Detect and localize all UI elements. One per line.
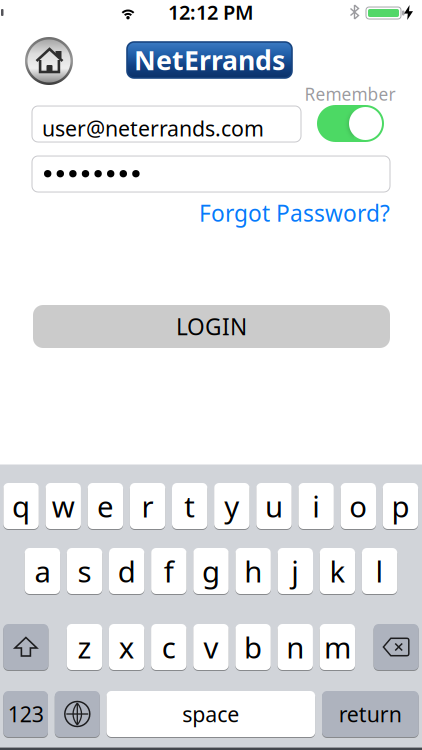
- button[interactable]: l: [362, 547, 397, 594]
- staticText: 12:12 PM: [168, 0, 254, 25]
- staticText: s: [77, 551, 91, 590]
- button[interactable]: x: [109, 623, 144, 670]
- button[interactable]: v: [193, 623, 229, 670]
- staticText: m: [324, 627, 351, 666]
- button[interactable]: c: [151, 623, 186, 670]
- staticText: z: [77, 627, 91, 666]
- staticText: v: [203, 627, 218, 666]
- staticText: x: [119, 627, 135, 666]
- button[interactable]: d: [109, 547, 144, 594]
- staticText: NetErrands: [134, 42, 285, 78]
- staticText: 123: [8, 700, 44, 728]
- staticText: p: [391, 486, 409, 525]
- button[interactable]: Password: [32, 156, 390, 192]
- button[interactable]: f: [151, 547, 186, 594]
- button[interactable]: s: [67, 547, 102, 594]
- button[interactable]: return: [322, 690, 419, 737]
- staticText: Forgot Password?: [199, 198, 390, 228]
- button[interactable]: NetErrands: [127, 42, 292, 78]
- button[interactable]: space: [106, 690, 315, 737]
- staticText: u: [265, 486, 283, 525]
- button[interactable]: n: [278, 623, 313, 670]
- button[interactable]: r: [130, 482, 165, 529]
- button[interactable]: o: [341, 482, 376, 529]
- staticText: return: [339, 700, 402, 728]
- staticText: o: [349, 486, 367, 525]
- button[interactable]: Shift: [3, 623, 48, 670]
- staticText: i: [312, 486, 320, 525]
- staticText: r: [141, 486, 153, 525]
- staticText: e: [97, 486, 114, 525]
- staticText: l: [376, 551, 384, 590]
- button[interactable]: u: [256, 482, 292, 529]
- button[interactable]: m: [320, 623, 355, 670]
- button[interactable]: Email: [32, 106, 301, 142]
- staticText: f: [164, 551, 174, 590]
- staticText: user@neterrands.com: [42, 114, 264, 142]
- button[interactable]: w: [45, 482, 81, 529]
- staticText: a: [34, 551, 50, 590]
- staticText: space: [182, 700, 239, 728]
- staticText: g: [202, 551, 220, 590]
- staticText: t: [184, 486, 195, 525]
- staticText: b: [244, 627, 262, 666]
- staticText: c: [162, 627, 176, 666]
- staticText: d: [118, 551, 136, 590]
- staticText: LOGIN: [176, 311, 247, 341]
- button[interactable]: h: [235, 547, 271, 594]
- button[interactable]: e: [88, 482, 123, 529]
- button[interactable]: y: [214, 482, 250, 529]
- button[interactable]: j: [278, 547, 313, 594]
- button[interactable]: t: [172, 482, 207, 529]
- button[interactable]: Next keyboard: [55, 690, 100, 737]
- button[interactable]: z: [67, 623, 102, 670]
- button[interactable]: Forgot Password?: [199, 198, 390, 228]
- button[interactable]: Home: [25, 37, 73, 85]
- button[interactable]: g: [193, 547, 229, 594]
- staticText: w: [52, 486, 75, 525]
- staticText: q: [12, 486, 30, 525]
- button[interactable]: a: [25, 547, 60, 594]
- button[interactable]: Remember: [317, 105, 384, 142]
- button[interactable]: Numbers: [3, 690, 48, 737]
- staticText: Remember: [304, 82, 395, 105]
- button[interactable]: b: [235, 623, 271, 670]
- button[interactable]: Delete: [374, 623, 419, 670]
- staticText: n: [286, 627, 304, 666]
- staticText: j: [291, 551, 299, 590]
- staticText: k: [329, 551, 345, 590]
- button[interactable]: q: [3, 482, 39, 529]
- staticText: y: [224, 486, 239, 525]
- staticText: h: [244, 551, 262, 590]
- button[interactable]: LOGIN: [33, 305, 390, 348]
- button[interactable]: p: [383, 482, 418, 529]
- button[interactable]: i: [298, 482, 334, 529]
- button[interactable]: k: [320, 547, 355, 594]
